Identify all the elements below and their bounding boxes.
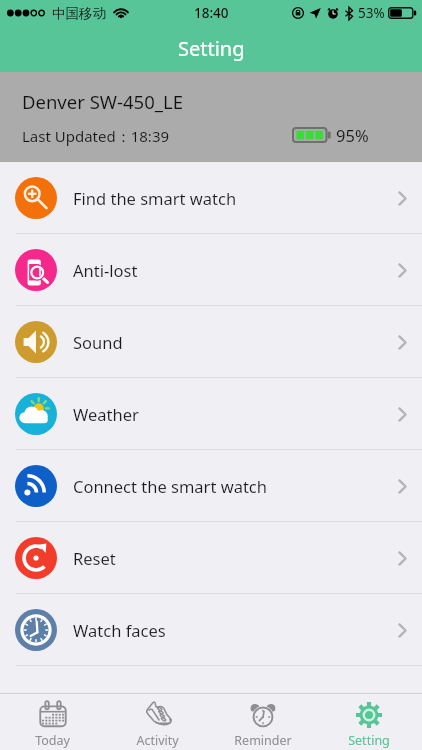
staticText: Reset <box>73 547 116 569</box>
button[interactable]: Reset <box>0 522 422 594</box>
button[interactable]: Reminder <box>210 694 316 750</box>
staticText: Denver SW-450_LE <box>22 89 183 114</box>
button[interactable]: Watch faces <box>0 594 422 666</box>
staticText: Connect the smart watch <box>73 475 267 497</box>
staticText: 95% <box>336 124 369 146</box>
staticText: Watch faces <box>73 619 166 641</box>
button[interactable]: Connect the smart watch <box>0 450 422 522</box>
staticText: 53% <box>358 4 385 22</box>
staticText: 中国移动 <box>52 5 106 22</box>
button[interactable]: Weather <box>0 378 422 450</box>
staticText: 18:40 <box>194 4 229 22</box>
button[interactable]: Sound <box>0 306 422 378</box>
button[interactable]: Today <box>0 694 105 750</box>
button[interactable]: Setting <box>316 694 422 750</box>
staticText: Anti-lost <box>73 259 138 281</box>
staticText: Activity <box>136 732 179 749</box>
staticText: Last Updated：18:39 <box>22 126 170 146</box>
staticText: Setting <box>178 35 245 62</box>
button[interactable]: Activity <box>105 694 210 750</box>
staticText: Setting <box>348 732 390 749</box>
staticText: Find the smart watch <box>73 187 237 209</box>
staticText: Today <box>35 732 70 749</box>
button[interactable]: Anti-lost <box>0 234 422 306</box>
staticText: Weather <box>73 403 139 425</box>
staticText: Sound <box>73 331 123 353</box>
staticText: Reminder <box>234 732 292 749</box>
button[interactable]: Find the smart watch <box>0 162 422 234</box>
